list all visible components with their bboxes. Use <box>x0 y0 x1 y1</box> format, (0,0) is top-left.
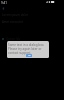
button[interactable]: OK <box>26 54 32 57</box>
button[interactable]: Back <box>0 4 8 13</box>
staticText: Lorem ipsum dolor <box>2 13 28 17</box>
staticText: Some text in a dialog box. Please try ag… <box>8 43 47 55</box>
staticText: OK <box>28 54 31 57</box>
staticText: 9:41 <box>1 1 7 5</box>
staticText: Amet consectet <box>2 20 24 24</box>
